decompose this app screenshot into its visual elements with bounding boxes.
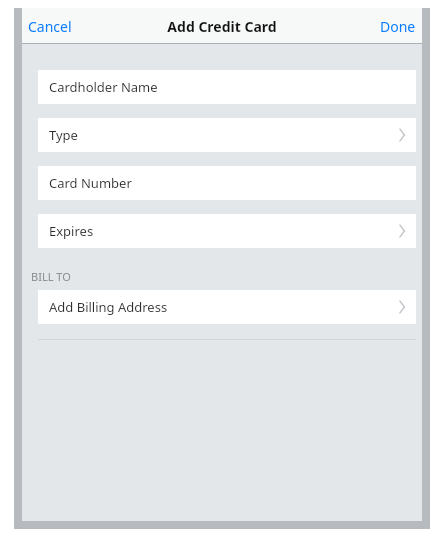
button[interactable]: Done <box>370 11 422 42</box>
button[interactable]: Add Billing Address <box>38 290 416 324</box>
button[interactable]: Cardholder Name <box>38 70 416 104</box>
staticText: Done <box>380 17 416 36</box>
staticText: Add Credit Card <box>167 17 277 36</box>
staticText: BILL TO <box>31 269 71 284</box>
staticText: Cancel <box>28 17 72 36</box>
staticText: Type <box>49 126 78 144</box>
button[interactable]: Cancel <box>22 11 82 42</box>
staticText: Card Number <box>49 174 132 192</box>
staticText: Cardholder Name <box>49 78 158 96</box>
button[interactable]: Card Number <box>38 166 416 200</box>
button[interactable]: Type <box>38 118 416 152</box>
staticText: Expires <box>49 222 94 240</box>
staticText: Add Billing Address <box>49 298 168 316</box>
button[interactable]: Expires <box>38 214 416 248</box>
